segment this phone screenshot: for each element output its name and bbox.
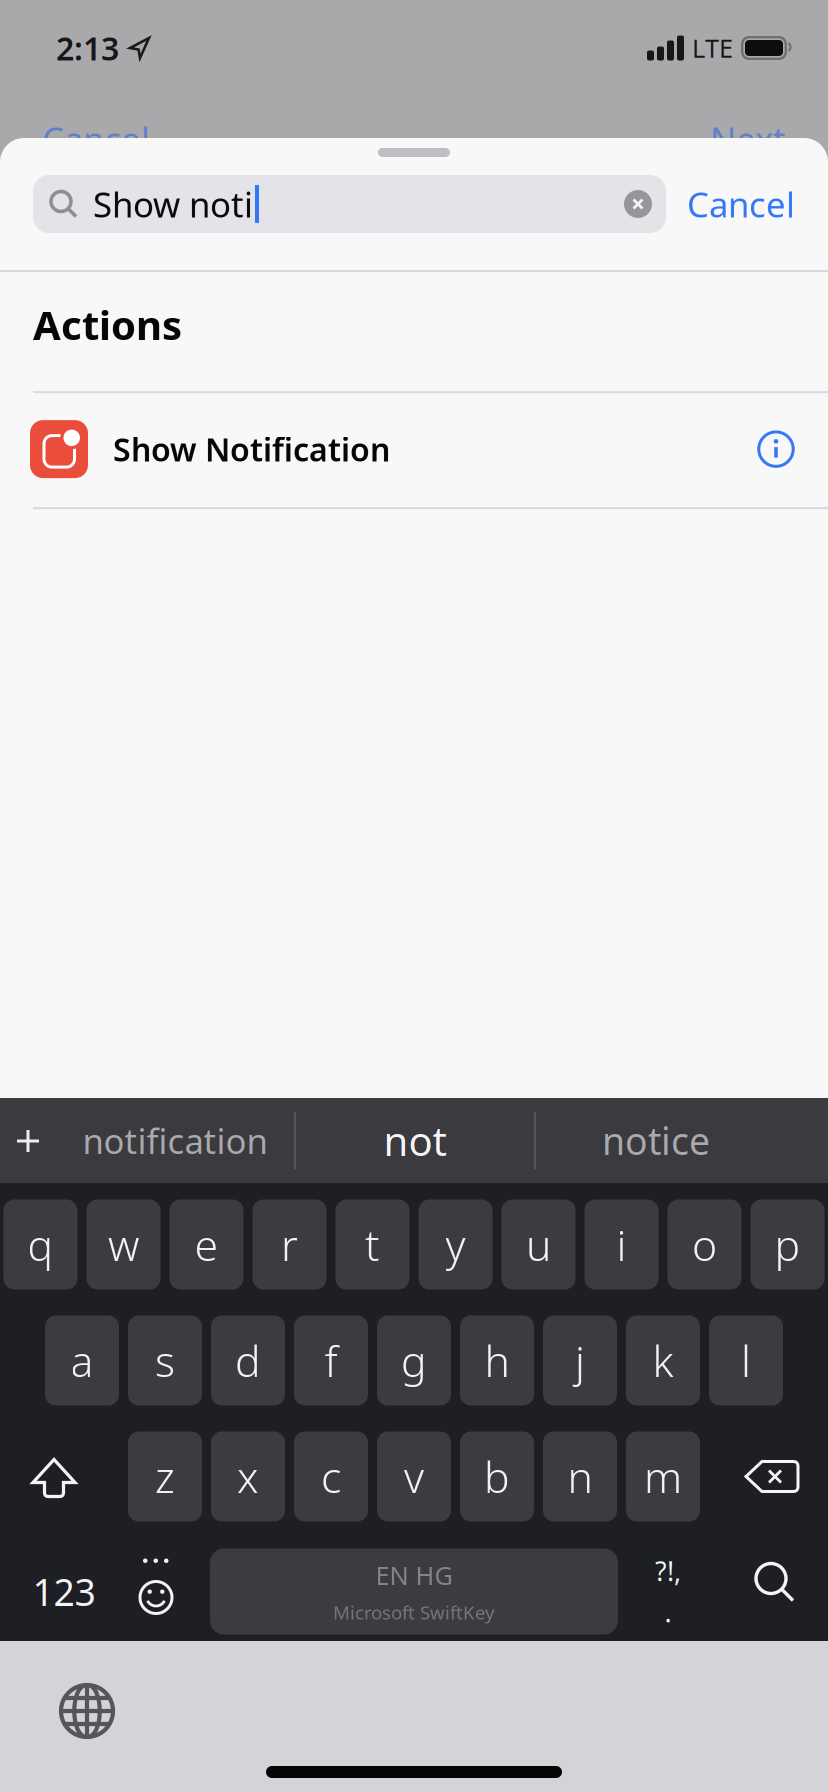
button[interactable]: q [3,1199,77,1289]
button[interactable]: notice [536,1098,776,1183]
button[interactable]: Cancel [42,116,150,162]
staticText: d [235,1332,261,1389]
staticText: LTE [692,31,733,65]
staticText: v [404,1448,424,1505]
staticText: Microsoft SwiftKey [333,1600,495,1625]
staticText: 123 [32,1567,95,1616]
button[interactable]: w [86,1199,160,1289]
staticText: . [664,1594,671,1630]
button[interactable]: s [128,1315,202,1405]
button[interactable]: k [626,1315,700,1405]
staticText: EN HG [375,1558,452,1592]
staticText: Show noti [93,181,253,227]
button[interactable]: not [296,1098,534,1183]
staticText: 2:13 [56,27,119,69]
button[interactable]: j [543,1315,617,1405]
staticText: p [774,1216,800,1273]
button[interactable]: d [211,1315,285,1405]
staticText: b [484,1448,510,1505]
button[interactable]: Show Notification [0,393,828,478]
staticText: c [321,1448,341,1505]
staticText: n [567,1448,592,1505]
button[interactable]: g [377,1315,451,1405]
button[interactable] [0,1431,128,1521]
button[interactable]: i [584,1199,658,1289]
button[interactable]: Next [710,116,786,162]
staticText: Show Notification [113,428,390,470]
button[interactable] [718,1547,828,1635]
button[interactable] [128,1547,184,1635]
button[interactable]: h [460,1315,534,1405]
staticText: q [27,1216,53,1273]
staticText: Cancel [687,181,795,227]
button[interactable]: t [335,1199,409,1289]
button[interactable] [757,430,795,468]
button[interactable]: p [750,1199,824,1289]
staticText: Cancel [42,116,150,162]
staticText: m [644,1448,682,1505]
button[interactable]: l [709,1315,783,1405]
staticText: w [108,1216,139,1273]
button[interactable]: 123 [0,1547,128,1635]
staticText: o [692,1216,717,1273]
button[interactable]: Cancel [666,181,795,227]
button[interactable]: o [667,1199,741,1289]
staticText: j [575,1332,585,1389]
button[interactable]: x [211,1431,285,1521]
staticText: t [365,1216,380,1273]
staticText: a [70,1332,93,1389]
staticText: Next [710,116,786,162]
staticText: i [616,1216,626,1273]
staticText: g [401,1332,427,1389]
button[interactable]: n [543,1431,617,1521]
button[interactable] [56,1680,118,1742]
button[interactable]: ?!, [618,1547,718,1635]
button[interactable]: z [128,1431,202,1521]
staticText: z [155,1448,175,1505]
button[interactable]: c [294,1431,368,1521]
button[interactable]: m [626,1431,700,1521]
button[interactable]: f [294,1315,368,1405]
staticText: notice [602,1116,710,1165]
staticText: Actions [33,298,182,351]
staticText: e [194,1216,218,1273]
staticText: notification [82,1117,267,1163]
button[interactable] [624,190,666,218]
staticText: f [324,1332,337,1389]
staticText: x [237,1448,259,1505]
staticText: k [652,1332,673,1389]
button[interactable]: r [252,1199,326,1289]
button[interactable]: b [460,1431,534,1521]
staticText: r [281,1216,298,1273]
button[interactable]: notification [56,1098,294,1183]
button[interactable]: u [501,1199,575,1289]
staticText: l [741,1332,751,1389]
staticText: h [484,1332,509,1389]
staticText: not [383,1114,446,1167]
button[interactable]: v [377,1431,451,1521]
staticText: ?!, [655,1553,681,1588]
button[interactable]: EN HG [210,1548,618,1634]
button[interactable] [0,1098,56,1183]
button[interactable]: e [169,1199,243,1289]
staticText: u [526,1216,551,1273]
button[interactable]: a [45,1315,119,1405]
button[interactable]: y [418,1199,492,1289]
staticText: y [445,1216,465,1273]
button[interactable] [700,1431,828,1521]
staticText: s [155,1332,175,1389]
